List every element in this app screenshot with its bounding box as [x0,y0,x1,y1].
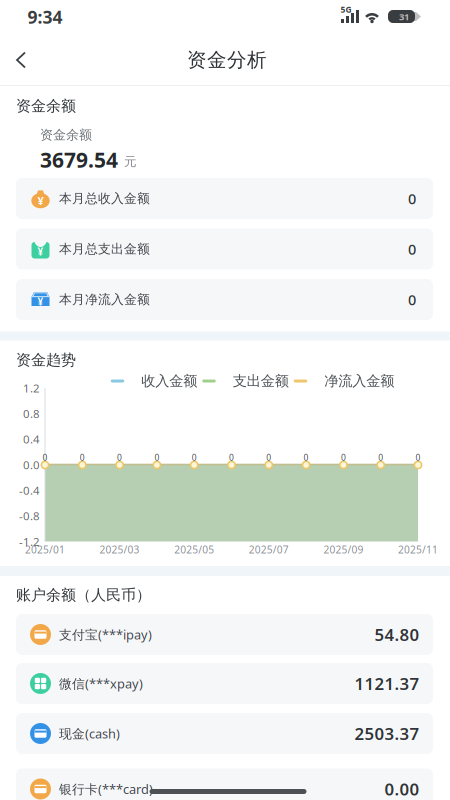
staticText: 5G [340,4,351,15]
staticText: 支出金额 [233,372,289,390]
staticText: 净流入金额 [324,372,394,390]
staticText: 31 [399,10,409,23]
staticText: -0.8 [19,508,40,524]
staticText: 1.2 [23,380,40,396]
staticText: 资金余额 [16,97,76,115]
staticText: 0 [408,290,416,309]
staticText: -1.2 [19,534,40,549]
staticText: 2025/07 [249,543,289,556]
button[interactable] [7,44,35,75]
staticText: 0.00 [384,778,419,800]
staticText: 本月总收入金额 [59,190,150,206]
staticText: 0 [415,452,420,463]
button[interactable]: ¥ [16,228,433,269]
staticText: 0 [154,452,159,463]
staticText: 元 [124,154,137,169]
staticText: 0 [80,452,85,463]
button[interactable]: 银行卡(***card) [16,768,433,800]
staticText: 2025/09 [323,543,363,556]
staticText: 2025/11 [398,543,438,556]
staticText: 0.0 [23,457,40,472]
staticText: 0.8 [23,406,40,421]
staticText: 资金趋势 [16,351,76,369]
staticText: 0 [341,452,346,463]
staticText: 银行卡(***card) [59,780,153,798]
staticText: 微信(***xpay) [59,675,143,692]
staticText: 0 [304,452,309,463]
staticText: ¥ [37,295,43,308]
staticText: 3679.54 [40,145,118,174]
staticText: 0 [42,452,47,463]
button[interactable]: ¥ [16,279,433,320]
staticText: 0 [266,452,271,463]
staticText: 0 [378,452,383,463]
staticText: 0 [117,452,122,463]
staticText: ¥ [37,193,43,208]
staticText: 本月净流入金额 [59,291,150,307]
staticText: 资金分析 [187,48,267,72]
button[interactable]: ¥ [16,178,433,219]
button[interactable]: 支付宝(***ipay) [16,614,433,655]
staticText: 54.80 [374,623,419,646]
staticText: 0 [229,452,234,463]
button[interactable]: 现金(cash) [16,713,433,754]
staticText: 2025/03 [100,543,140,556]
staticText: 1121.37 [354,672,419,695]
staticText: 2503.37 [354,722,419,745]
staticText: 0.4 [23,431,40,447]
staticText: 账户余额（人民币） [16,586,151,604]
staticText: 现金(cash) [59,725,120,742]
staticText: ¥ [37,245,43,258]
staticText: 0 [408,189,416,208]
staticText: 收入金额 [141,372,197,390]
staticText: 资金余额 [40,127,92,143]
staticText: 9:34 [27,5,62,29]
staticText: -0.4 [19,483,40,498]
staticText: 0 [192,452,197,463]
button[interactable]: 微信(***xpay) [16,663,433,704]
staticText: 本月总支出金额 [59,241,150,257]
staticText: 2025/05 [174,543,214,556]
staticText: 2025/01 [25,543,65,556]
staticText: 0 [408,239,416,259]
staticText: 支付宝(***ipay) [59,626,152,643]
